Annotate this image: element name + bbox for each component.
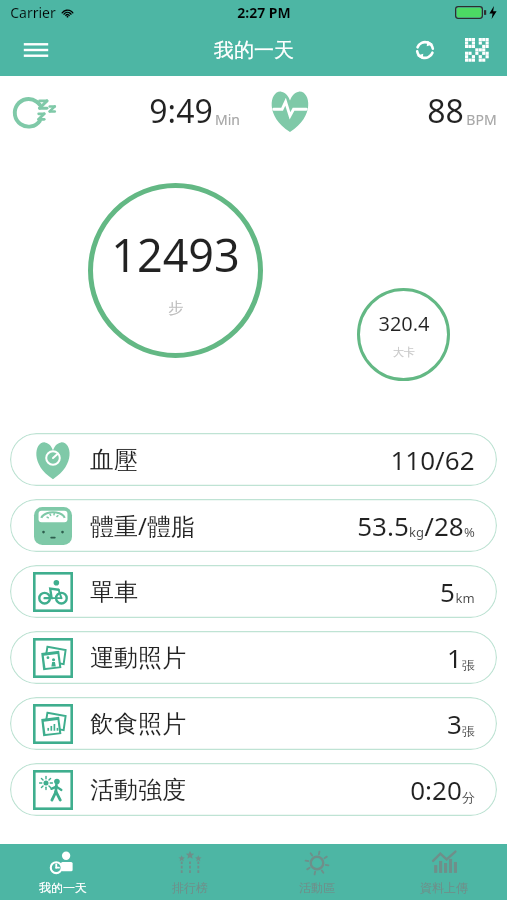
button[interactable]: Refresh xyxy=(403,28,447,72)
button[interactable]: 活動區 xyxy=(253,844,380,900)
button[interactable]: 單車 xyxy=(10,565,497,618)
staticText: 飲食照片 xyxy=(90,709,186,739)
staticText: 資料上傳 xyxy=(420,880,468,895)
staticText: 我的一天 xyxy=(214,38,294,63)
staticText: 1 xyxy=(447,640,462,675)
staticText: 運動照片 xyxy=(90,643,186,673)
button[interactable]: QR code xyxy=(455,28,499,72)
staticText: 單車 xyxy=(90,577,138,607)
button[interactable]: 飲食照片 xyxy=(10,697,497,750)
staticText: 320.4 xyxy=(378,310,430,337)
button[interactable]: 體重/體脂 xyxy=(10,499,497,552)
button[interactable]: 血壓 xyxy=(10,433,497,486)
staticText: 5 xyxy=(440,574,455,609)
staticText: 體重/體脂 xyxy=(90,509,195,542)
button[interactable]: 88 xyxy=(256,77,507,145)
staticText: BPM xyxy=(466,110,497,129)
staticText: 張 xyxy=(462,657,475,673)
staticText: km xyxy=(455,589,475,607)
staticText: 3 xyxy=(447,706,462,741)
staticText: 排行榜 xyxy=(172,880,208,895)
button[interactable]: 我的一天 xyxy=(0,844,126,900)
staticText: kg xyxy=(409,523,424,541)
staticText: 大卡 xyxy=(393,345,415,359)
staticText: 步 xyxy=(168,299,183,318)
staticText: 12493 xyxy=(111,224,240,285)
button[interactable]: 運動照片 xyxy=(10,631,497,684)
staticText: 血壓 xyxy=(90,445,138,475)
button[interactable]: Menu xyxy=(14,28,58,72)
staticText: 0:20 xyxy=(410,772,462,807)
staticText: Min xyxy=(215,110,240,129)
button[interactable]: 排行榜 xyxy=(126,844,253,900)
staticText: 活動區 xyxy=(299,880,335,895)
staticText: 分 xyxy=(462,789,475,805)
staticText: 110/62 xyxy=(390,442,475,477)
button[interactable]: 資料上傳 xyxy=(380,844,507,900)
staticText: 張 xyxy=(462,723,475,739)
staticText: 88 xyxy=(427,89,464,133)
button[interactable]: 活動強度 xyxy=(10,763,497,816)
staticText: 9:49 xyxy=(149,89,213,133)
staticText: Carrier xyxy=(10,3,56,22)
button[interactable]: 9:49 xyxy=(0,77,250,145)
staticText: /28 xyxy=(424,508,464,543)
staticText: 我的一天 xyxy=(39,880,87,895)
staticText: 2:27 PM xyxy=(237,3,291,22)
staticText: 53.5 xyxy=(357,508,409,543)
button[interactable]: Calories xyxy=(357,288,450,381)
staticText: % xyxy=(464,523,475,541)
button[interactable]: Steps xyxy=(88,183,263,358)
staticText: 活動強度 xyxy=(90,775,186,805)
